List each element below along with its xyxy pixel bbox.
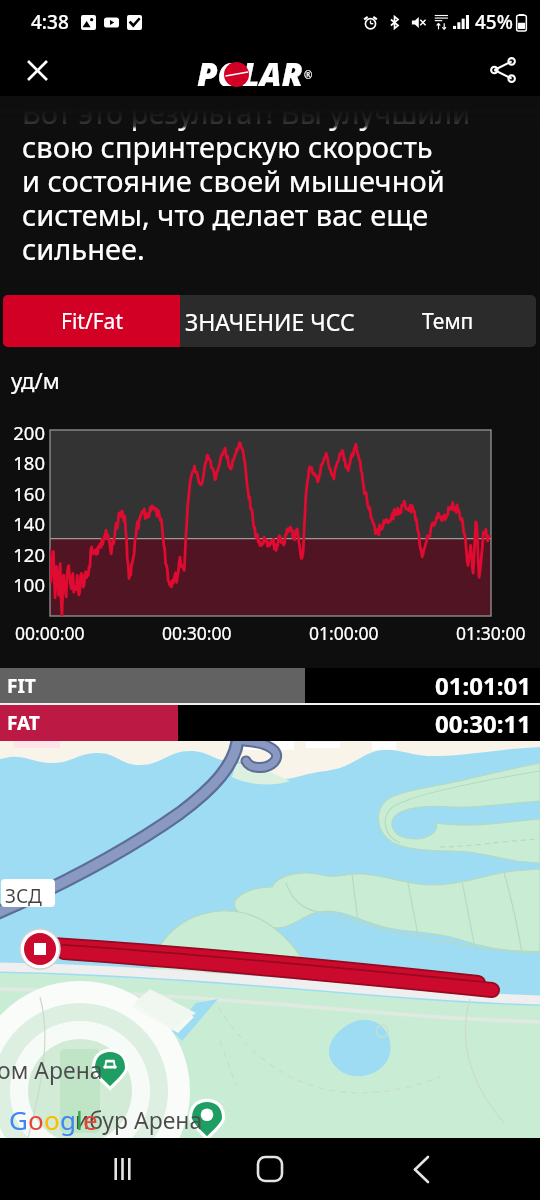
staticText: g: [60, 1102, 76, 1137]
staticText: 120: [8, 542, 45, 567]
button[interactable]: ЗНАЧЕНИЕ ЧСС: [180, 295, 360, 347]
staticText: Fit/Fat: [61, 307, 123, 336]
staticText: 200: [8, 420, 45, 445]
staticText: 180: [8, 450, 45, 475]
staticText: и состояние своей мышечной: [22, 161, 445, 200]
staticText: ибур Арена: [75, 1104, 203, 1135]
button[interactable]: Back: [384, 1138, 458, 1200]
staticText: e: [83, 1102, 98, 1137]
button[interactable]: Close: [13, 46, 61, 94]
staticText: ЗСД: [5, 883, 42, 909]
staticText: сильнее.: [22, 229, 145, 268]
staticText: 00:00:00: [15, 621, 85, 645]
staticText: 00:30:11: [435, 707, 531, 740]
button[interactable]: Route map: [0, 741, 540, 1138]
staticText: 100: [8, 572, 45, 597]
staticText: G: [9, 1102, 28, 1137]
button[interactable]: Home: [233, 1138, 307, 1200]
staticText: 45%: [475, 9, 513, 35]
staticText: уд/м: [11, 365, 60, 395]
button[interactable]: Темп: [360, 295, 536, 347]
staticText: o: [28, 1102, 44, 1137]
staticText: l: [76, 1102, 83, 1137]
button[interactable]: FAT: [0, 705, 540, 741]
staticText: FIT: [7, 673, 36, 699]
staticText: 01:30:00: [456, 621, 526, 645]
staticText: o: [44, 1102, 60, 1137]
staticText: ®: [304, 68, 313, 82]
button[interactable]: Recent apps: [85, 1138, 159, 1200]
button[interactable]: Share: [479, 46, 527, 94]
staticText: 4:38: [31, 9, 69, 35]
button[interactable]: FIT: [0, 668, 540, 703]
staticText: 01:00:00: [309, 621, 379, 645]
staticText: свою спринтерскую скорость: [22, 127, 433, 166]
staticText: 00:30:00: [162, 621, 232, 645]
staticText: FAT: [7, 710, 40, 736]
staticText: Вот это результат! Вы улучшили: [22, 93, 471, 132]
staticText: POLAR: [197, 52, 304, 86]
staticText: 01:01:01: [435, 669, 531, 702]
staticText: 140: [8, 511, 45, 536]
staticText: ом Арена: [0, 1054, 103, 1085]
staticText: системы, что делает вас еще: [22, 195, 429, 234]
staticText: Темп: [422, 307, 474, 336]
button[interactable]: Fit/Fat: [3, 295, 180, 347]
staticText: ЗНАЧЕНИЕ ЧСС: [185, 306, 355, 337]
staticText: 160: [8, 481, 45, 506]
